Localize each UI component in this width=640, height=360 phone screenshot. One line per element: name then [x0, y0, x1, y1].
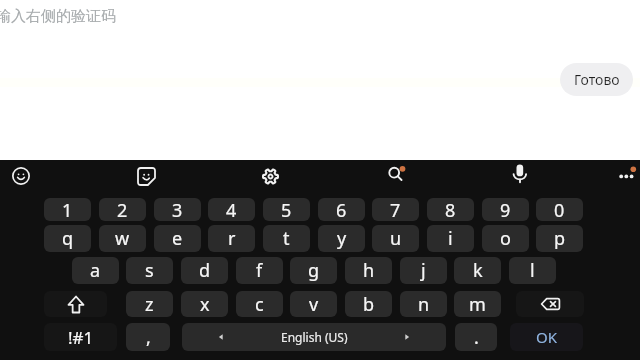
- staticText: z: [145, 292, 154, 317]
- button[interactable]: .: [455, 323, 497, 351]
- staticText: 5: [281, 198, 292, 221]
- button[interactable]: m: [454, 291, 501, 317]
- staticText: g: [308, 258, 320, 283]
- button[interactable]: g: [290, 257, 337, 284]
- button[interactable]: Backspace: [516, 291, 584, 317]
- staticText: ,: [146, 325, 151, 350]
- staticText: v: [309, 292, 319, 317]
- button[interactable]: 5: [263, 198, 310, 221]
- button[interactable]: Emoji: [0, 158, 44, 194]
- staticText: !#1: [68, 326, 94, 349]
- staticText: f: [256, 258, 263, 283]
- staticText: p: [554, 226, 566, 251]
- button[interactable]: d: [181, 257, 228, 284]
- staticText: w: [115, 226, 130, 251]
- staticText: q: [62, 226, 74, 251]
- button[interactable]: w: [99, 225, 146, 252]
- staticText: j: [421, 258, 426, 283]
- button[interactable]: Stickers: [123, 158, 169, 194]
- staticText: 8: [445, 198, 456, 221]
- button[interactable]: 7: [372, 198, 419, 221]
- button[interactable]: Готово: [560, 63, 633, 96]
- button[interactable]: ,: [126, 323, 170, 351]
- staticText: d: [199, 258, 211, 283]
- button[interactable]: 1: [44, 198, 91, 221]
- staticText: 7: [390, 198, 401, 221]
- button[interactable]: English (US): [182, 323, 446, 351]
- button[interactable]: n: [400, 291, 447, 317]
- button[interactable]: b: [345, 291, 392, 317]
- button[interactable]: u: [372, 225, 419, 252]
- button[interactable]: Search: [372, 158, 418, 194]
- button[interactable]: h: [345, 257, 392, 284]
- button[interactable]: y: [318, 225, 365, 252]
- staticText: c: [255, 292, 264, 317]
- button[interactable]: v: [290, 291, 337, 317]
- staticText: 9: [500, 198, 511, 221]
- staticText: x: [200, 292, 210, 317]
- staticText: u: [390, 226, 402, 251]
- staticText: a: [90, 258, 101, 283]
- button[interactable]: k: [454, 257, 501, 284]
- button[interactable]: !#1: [44, 323, 117, 351]
- staticText: 输入右侧的验证码: [0, 7, 116, 26]
- button[interactable]: r: [208, 225, 255, 252]
- button[interactable]: 6: [318, 198, 365, 221]
- staticText: 1: [62, 198, 73, 221]
- button[interactable]: 0: [536, 198, 583, 221]
- staticText: .: [474, 325, 479, 350]
- button[interactable]: j: [400, 257, 447, 284]
- button[interactable]: o: [482, 225, 529, 252]
- staticText: 4: [226, 198, 237, 221]
- button[interactable]: Settings: [247, 158, 293, 194]
- staticText: m: [469, 292, 486, 317]
- staticText: i: [448, 226, 453, 251]
- button[interactable]: z: [126, 291, 173, 317]
- button[interactable]: s: [126, 257, 173, 284]
- button[interactable]: 9: [482, 198, 529, 221]
- staticText: 6: [336, 198, 347, 221]
- staticText: English (US): [281, 329, 348, 345]
- staticText: s: [145, 258, 154, 283]
- button[interactable]: q: [44, 225, 91, 252]
- button[interactable]: Voice input: [497, 158, 543, 194]
- button[interactable]: f: [236, 257, 283, 284]
- button[interactable]: x: [181, 291, 228, 317]
- staticText: 3: [172, 198, 183, 221]
- button[interactable]: 3: [154, 198, 201, 221]
- button[interactable]: c: [236, 291, 283, 317]
- button[interactable]: l: [509, 257, 556, 284]
- staticText: y: [337, 226, 347, 251]
- button[interactable]: 2: [99, 198, 146, 221]
- staticText: Готово: [574, 70, 620, 89]
- button[interactable]: t: [263, 225, 310, 252]
- button[interactable]: a: [72, 257, 119, 284]
- button[interactable]: e: [154, 225, 201, 252]
- button[interactable]: i: [427, 225, 474, 252]
- staticText: t: [283, 226, 290, 251]
- staticText: 2: [117, 198, 128, 221]
- staticText: k: [473, 258, 483, 283]
- button[interactable]: 4: [208, 198, 255, 221]
- staticText: n: [418, 292, 430, 317]
- button[interactable]: 8: [427, 198, 474, 221]
- staticText: r: [228, 226, 236, 251]
- staticText: 0: [554, 198, 565, 221]
- staticText: OK: [536, 327, 558, 347]
- staticText: h: [363, 258, 375, 283]
- staticText: l: [530, 258, 535, 283]
- button[interactable]: p: [536, 225, 583, 252]
- button[interactable]: OK: [510, 323, 583, 351]
- staticText: b: [363, 292, 375, 317]
- staticText: o: [500, 226, 511, 251]
- staticText: e: [172, 226, 183, 251]
- button[interactable]: More options: [608, 158, 640, 194]
- button[interactable]: Shift: [44, 291, 107, 317]
